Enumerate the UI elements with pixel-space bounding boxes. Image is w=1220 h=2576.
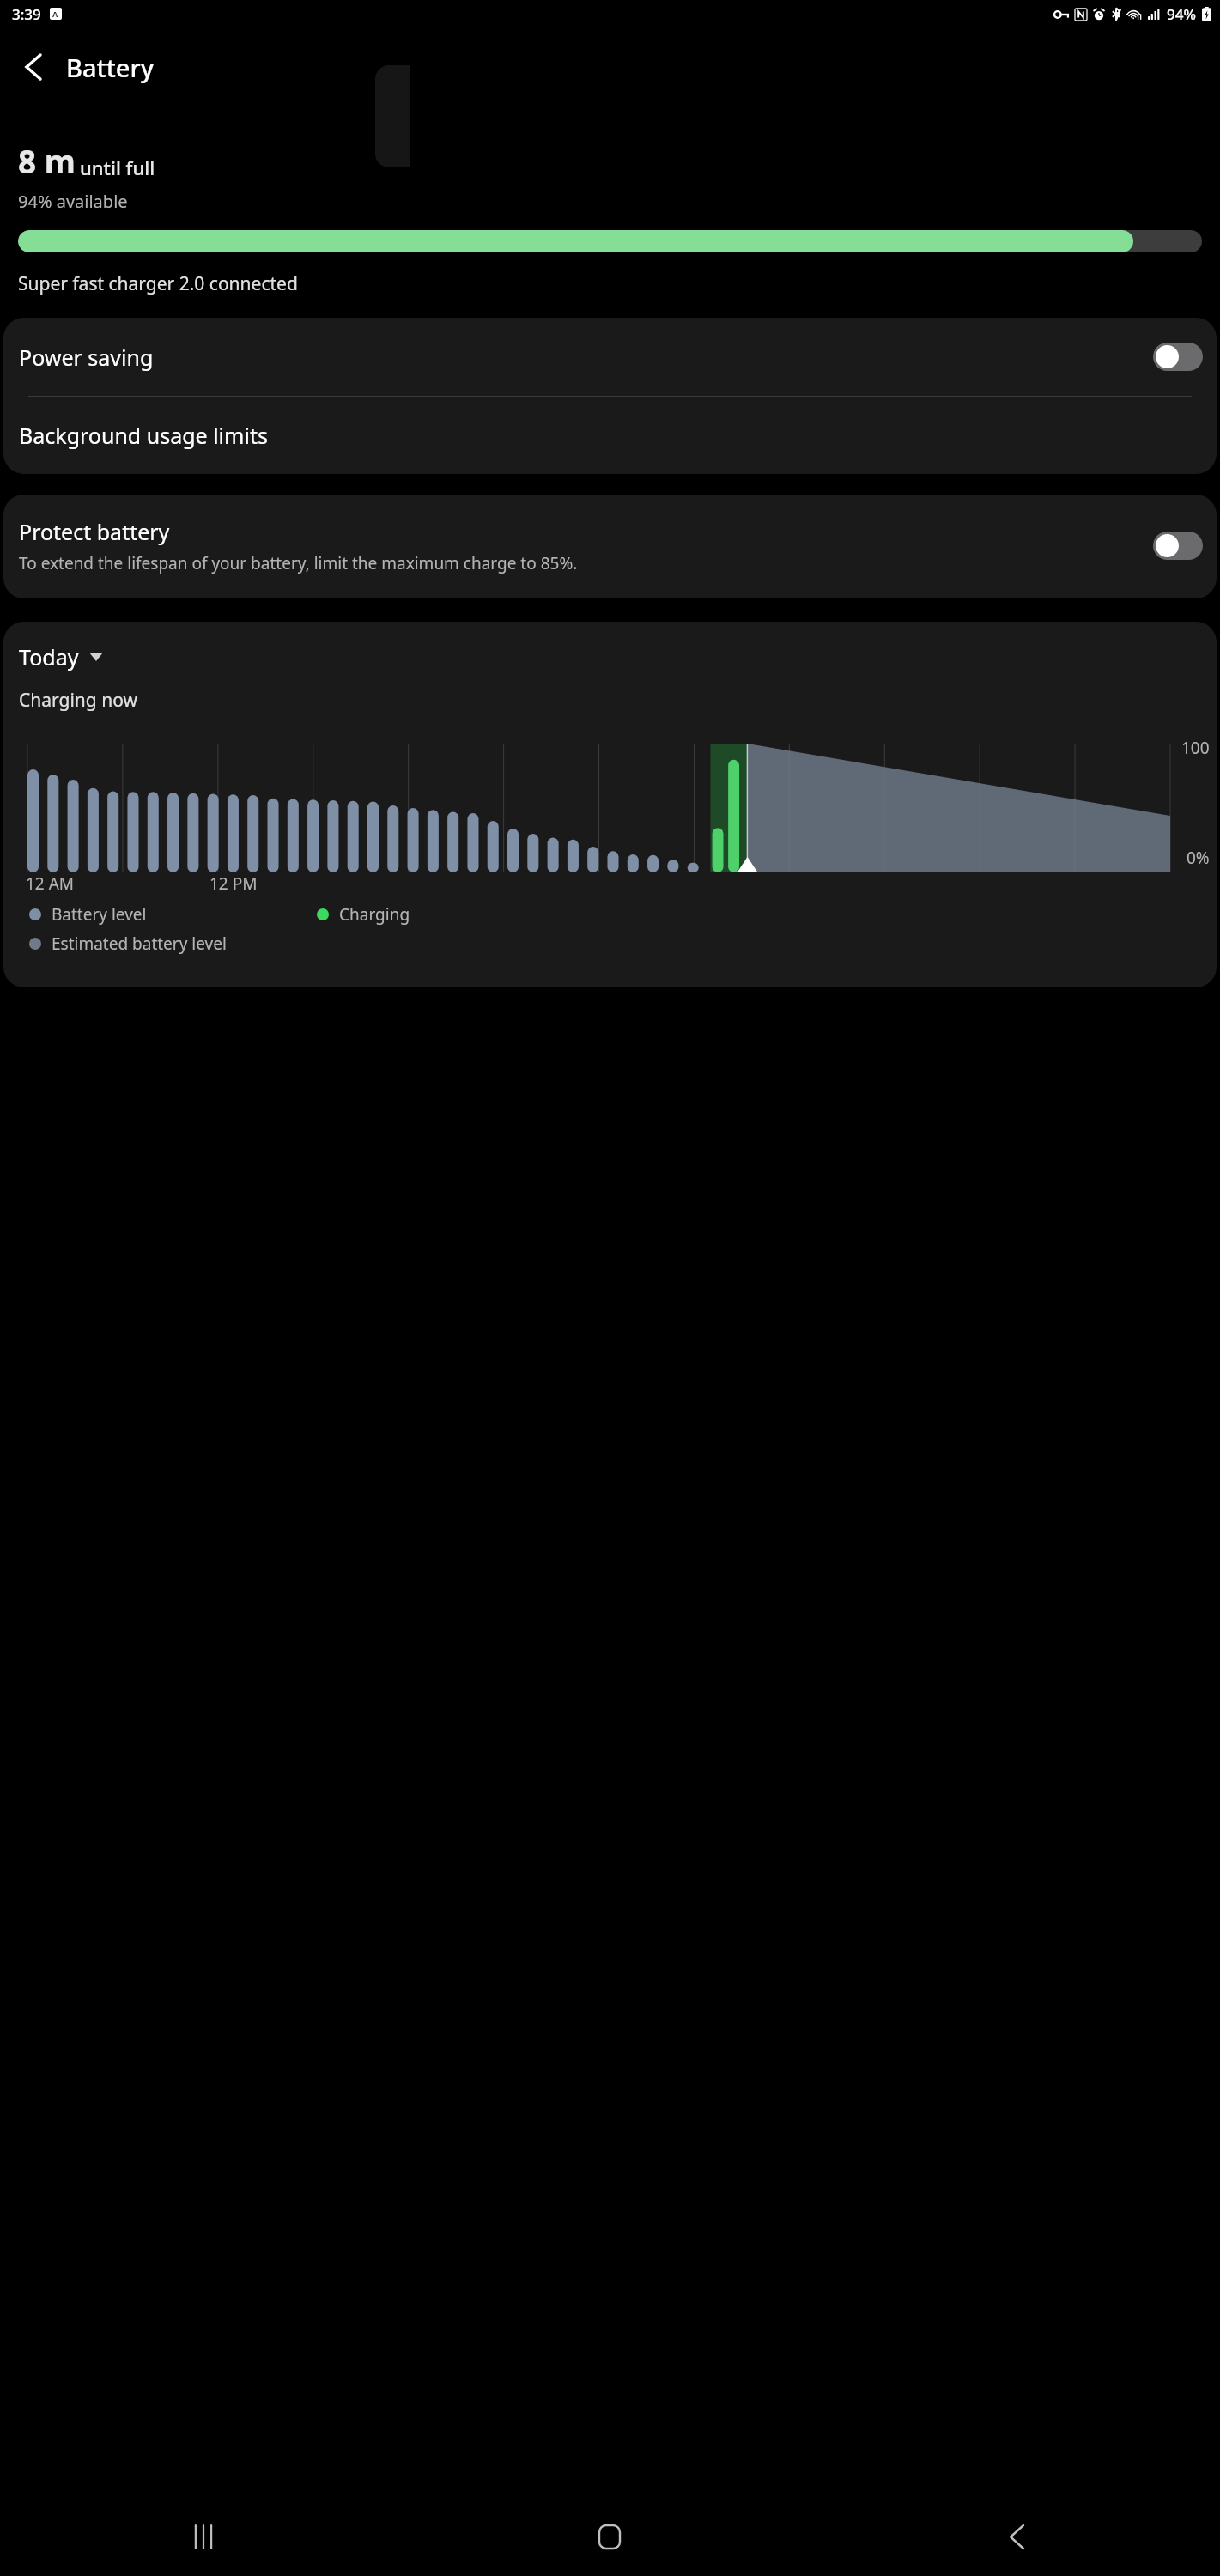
button[interactable]: Today: [19, 642, 103, 671]
staticText: 100: [1181, 737, 1210, 759]
staticText: Power saving: [19, 343, 1138, 372]
staticText: 94% available: [18, 190, 128, 213]
button[interactable]: Background usage limits: [3, 397, 1217, 474]
staticText: Battery level: [52, 903, 147, 926]
button[interactable]: Power saving: [3, 318, 1217, 396]
staticText: 12 PM: [209, 872, 258, 895]
staticText: Background usage limits: [19, 421, 268, 450]
staticText: A: [52, 9, 58, 19]
staticText: 12 AM: [26, 872, 75, 895]
button[interactable]: Toggle: [1153, 343, 1203, 371]
staticText: Battery: [66, 51, 154, 84]
staticText: Estimated battery level: [52, 933, 227, 955]
button[interactable]: Protect battery: [3, 495, 1217, 598]
staticText: Protect battery: [19, 517, 170, 546]
staticText: Charging: [339, 903, 410, 926]
staticText: 8 m: [18, 139, 76, 182]
staticText: until full: [80, 155, 155, 180]
button[interactable]: Recent apps: [0, 2497, 406, 2576]
staticText: Today: [19, 642, 79, 671]
staticText: 0%: [1187, 847, 1210, 869]
button[interactable]: Back: [10, 44, 57, 90]
staticText: Charging now: [19, 688, 137, 713]
staticText: Super fast charger 2.0 connected: [18, 271, 298, 296]
staticText: To extend the lifespan of your battery, …: [19, 552, 578, 574]
button[interactable]: Toggle: [1153, 532, 1203, 560]
staticText: 3:39: [12, 4, 41, 24]
button[interactable]: Home: [406, 2497, 813, 2576]
button[interactable]: Back: [813, 2497, 1220, 2576]
staticText: 94%: [1167, 4, 1196, 24]
